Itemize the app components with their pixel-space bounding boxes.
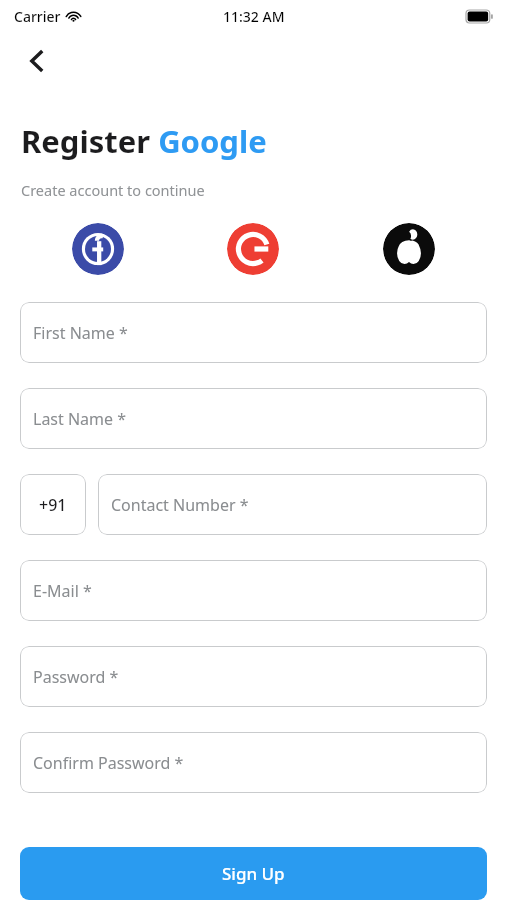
button[interactable]: Sign up with Apple <box>383 223 435 275</box>
button[interactable]: E-Mail * <box>20 560 487 621</box>
button[interactable]: Last Name * <box>20 388 487 449</box>
staticText: Password * <box>33 666 119 688</box>
button[interactable]: Confirm Password * <box>20 732 487 793</box>
staticText: Register Google <box>21 120 267 162</box>
staticText: E-Mail * <box>33 580 92 602</box>
staticText: Create account to continue <box>21 180 205 200</box>
staticText: Confirm Password * <box>33 752 184 774</box>
button[interactable]: First Name * <box>20 302 487 363</box>
staticText: +91 <box>39 494 67 516</box>
button[interactable]: +91 <box>20 474 86 535</box>
staticText: Sign Up <box>222 862 285 885</box>
button[interactable]: Contact Number * <box>98 474 487 535</box>
button[interactable]: Back <box>16 40 58 82</box>
staticText: First Name * <box>33 322 128 344</box>
staticText: Contact Number * <box>111 494 249 516</box>
staticText: Carrier <box>14 7 61 26</box>
button[interactable]: Sign Up <box>20 847 487 900</box>
button[interactable]: Sign up with Google <box>227 223 279 275</box>
staticText: 11:32 AM <box>223 7 285 26</box>
staticText: Last Name * <box>33 408 127 430</box>
button[interactable]: Password * <box>20 646 487 707</box>
button[interactable]: Sign up with Facebook <box>72 223 124 275</box>
